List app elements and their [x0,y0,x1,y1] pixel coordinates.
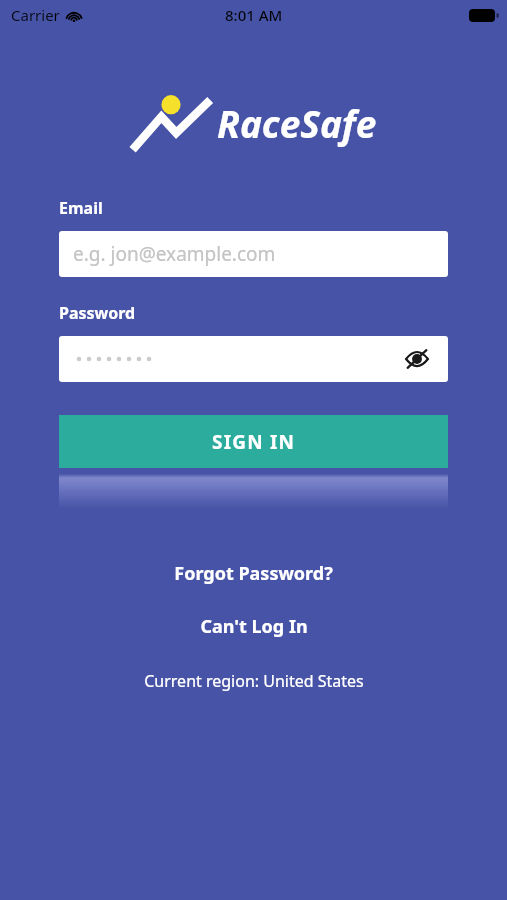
staticText: Can't Log In [200,614,308,639]
button[interactable]: Show password [400,342,434,376]
staticText: Current region: United States [144,670,364,692]
staticText: SIGN IN [212,429,296,455]
staticText: 8:01 AM [225,5,283,25]
button[interactable]: Show password [59,336,448,382]
button[interactable]: Forgot Password? [156,558,351,589]
button[interactable]: Can't Log In [182,611,326,642]
staticText: Forgot Password? [174,561,333,586]
staticText: e.g. jon@example.com [73,241,276,267]
staticText: Password [59,302,136,324]
staticText: Email [59,197,103,219]
staticText: RaceSafe [217,98,377,148]
button[interactable]: SIGN IN [59,415,448,468]
staticText: Carrier [11,5,60,25]
button[interactable]: Current region: United States [126,667,382,695]
button[interactable]: e.g. jon@example.com [59,231,448,277]
